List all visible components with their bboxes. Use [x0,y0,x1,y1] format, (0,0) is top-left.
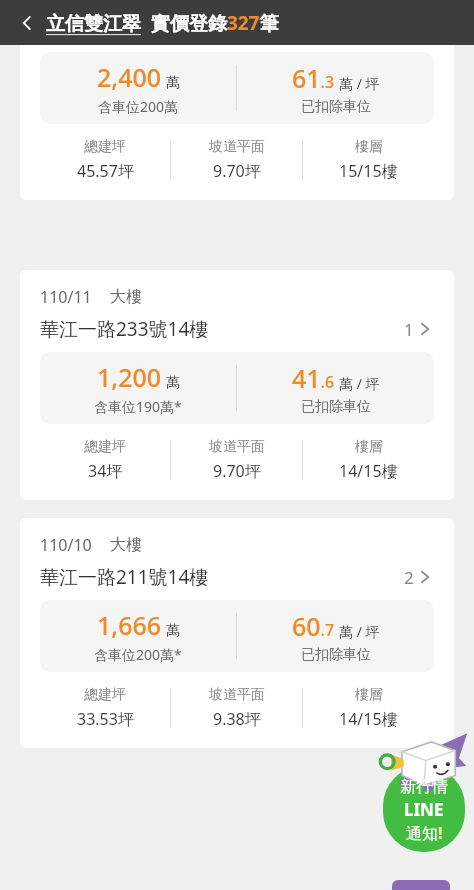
staticText: 含車位200萬 [98,97,179,116]
staticText: 坡道平面 [209,138,265,156]
staticText: 坡道平面 [209,686,265,704]
staticText: 萬 / 坪 [339,374,380,393]
staticText: 1,666 [97,608,162,642]
staticText: 大樓 [110,287,142,307]
staticText: 總建坪 [84,138,126,156]
button[interactable]: 新行情 LINE 通知 [378,732,470,852]
button[interactable]: Back [10,6,44,40]
staticText: 9.70坪 [213,460,261,482]
staticText: 華江一路211號14樓 [40,564,404,590]
button[interactable]: 立信雙江翠 實價登錄327筆 [46,10,279,36]
staticText: 已扣除車位 [301,646,371,664]
staticText: 含車位200萬* [94,645,182,664]
staticText: 9.38坪 [213,708,261,730]
staticText: 萬 / 坪 [339,622,380,641]
staticText: 2,400 [97,60,162,94]
staticText: 41.6 [292,361,335,395]
staticText: 14/15樓 [339,460,398,482]
staticText: 樓層 [355,686,383,704]
staticText: 華江一路233號14樓 [40,316,404,342]
staticText: 15/15樓 [339,160,398,182]
staticText: 萬 [166,374,180,392]
button[interactable]: 110/11 [20,0,454,200]
staticText: 萬 / 坪 [339,74,380,93]
staticText: 含車位190萬* [94,397,182,416]
staticText: 2 [404,566,414,589]
staticText: 110/11 [40,286,92,308]
staticText: 樓層 [355,138,383,156]
staticText: 大樓 [110,535,142,555]
button[interactable]: 110/10 [20,518,454,748]
staticText: 萬 [166,622,180,640]
staticText: 總建坪 [84,438,126,456]
staticText: 已扣除車位 [301,398,371,416]
staticText: 1 [404,318,414,341]
staticText: 通知! [406,822,443,844]
staticText: 華江一路221號15樓 [40,16,404,42]
staticText: 33.53坪 [77,708,134,730]
staticText: 坡道平面 [209,438,265,456]
staticText: 萬 [166,74,180,92]
staticText: 14/15樓 [339,708,398,730]
staticText: 60.7 [292,609,335,643]
staticText: 45.57坪 [77,160,134,182]
staticText: 已扣除車位 [301,98,371,116]
staticText: 34坪 [88,460,123,482]
staticText: 1,200 [97,360,162,394]
staticText: 新行情 [400,777,448,797]
staticText: 110/10 [40,534,92,556]
button[interactable]: 110/11 [20,270,454,500]
staticText: LINE [404,798,444,821]
staticText: 樓層 [355,438,383,456]
staticText: 總建坪 [84,686,126,704]
button[interactable]: 更多 [392,880,450,890]
staticText: 9.70坪 [213,160,261,182]
staticText: 61.3 [292,61,335,95]
